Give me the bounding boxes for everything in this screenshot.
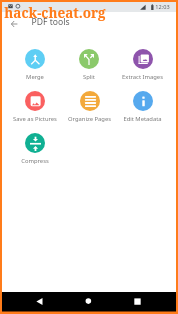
button[interactable]: Extract Images [114,49,170,83]
button[interactable]: Back [33,295,46,308]
staticText: Merge [26,73,44,81]
button[interactable]: Merge [7,49,63,83]
staticText: 12:03 [155,3,170,11]
staticText: Edit Metadata [123,115,162,123]
button[interactable]: Edit Metadata [114,91,170,125]
staticText: PDF tools [31,16,70,28]
button[interactable]: Home [82,295,95,308]
button[interactable]: Navigate up [4,14,24,34]
button[interactable]: Compress [7,133,63,167]
staticText: hack-cheat.org [4,4,106,22]
staticText: Save as Pictures [13,115,57,123]
staticText: Organize Pages [68,115,111,123]
button[interactable]: Recent apps [131,295,144,308]
button[interactable]: Organize Pages [61,91,117,125]
button[interactable]: PDF tools [31,11,111,32]
staticText: Split [83,73,95,81]
button[interactable]: Save as Pictures [7,91,63,125]
staticText: Compress [21,157,49,165]
staticText: Extract Images [122,73,163,81]
button[interactable]: Split [61,49,117,83]
